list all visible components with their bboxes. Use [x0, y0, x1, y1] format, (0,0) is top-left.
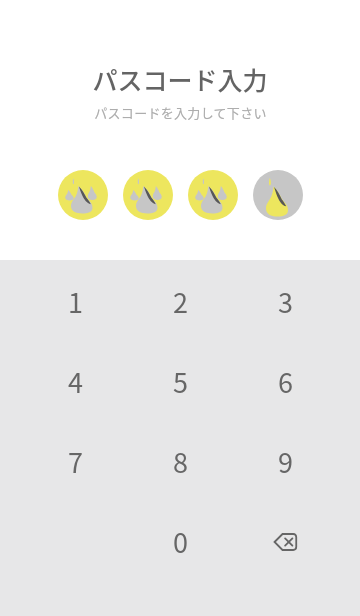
button[interactable]: 1	[22, 261, 128, 341]
staticText: 8	[173, 442, 188, 481]
button[interactable]: 7	[22, 421, 128, 501]
button[interactable]: Backspace	[233, 501, 338, 581]
button[interactable]: 6	[233, 341, 338, 421]
staticText: 0	[173, 522, 188, 561]
button[interactable]: 3	[233, 261, 338, 341]
staticText: 3	[278, 282, 293, 321]
staticText: パスコードを入力して下さい	[94, 103, 267, 122]
staticText: パスコード入力	[92, 61, 268, 97]
staticText: 9	[278, 442, 293, 481]
button[interactable]: 8	[128, 421, 233, 501]
staticText: 7	[68, 442, 83, 481]
staticText: 5	[173, 362, 188, 401]
button[interactable]: 2	[128, 261, 233, 341]
staticText: 2	[173, 282, 188, 321]
staticText: 4	[68, 362, 83, 401]
button[interactable]: 4	[22, 341, 128, 421]
button[interactable]: 0	[128, 501, 233, 581]
button[interactable]: 5	[128, 341, 233, 421]
staticText: 1	[68, 282, 83, 321]
other: Backspace	[273, 528, 301, 556]
button[interactable]: 9	[233, 421, 338, 501]
staticText: 6	[278, 362, 293, 401]
